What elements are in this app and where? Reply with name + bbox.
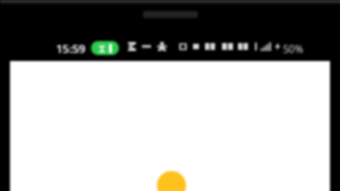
button[interactable]: Ongoing call [91,41,119,55]
staticText: 50% [283,42,304,56]
button[interactable] [10,61,330,191]
staticText: 15:59 [56,41,86,57]
